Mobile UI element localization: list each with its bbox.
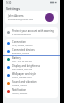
staticText: Colors, themed icons [12,76,32,79]
staticText: Dark theme, font size [12,68,33,71]
button[interactable]: John Abrams [5,11,58,24]
staticText: Settings [6,6,20,11]
staticText: johnabrams@gmail.com [8,18,34,21]
staticText: Sound and vibration [12,80,37,84]
button[interactable]: Sound and vibration [5,79,58,87]
button[interactable]: Connection [5,39,58,47]
staticText: Bluetooth, pairing [12,52,30,55]
button[interactable]: Display and brightness [5,63,58,71]
staticText: 3 recommendations [12,33,31,36]
staticText: Wi-Fi, mobile, hotspot [12,44,33,47]
staticText: Connection [12,40,26,44]
staticText: 9:30 [6,1,12,5]
button[interactable]: Notification [5,87,58,95]
staticText: 75% - 5 hr 20 min left [12,60,32,63]
staticText: Display and brightness [12,64,40,68]
staticText: Volume, haptics [12,84,27,87]
staticText: Notification [12,88,27,92]
staticText: Protect your account with warning [12,29,54,33]
button[interactable]: Protect your account with warning [5,27,58,37]
staticText: History, bubbles [12,92,28,95]
staticText: Connected devices [12,48,35,52]
button[interactable]: Wallpaper and style [5,71,58,79]
staticText: Wallpaper and style [12,72,36,76]
button[interactable]: Connected devices [5,47,58,55]
other: Account avatar [45,13,54,22]
button[interactable]: Battery [5,55,58,63]
staticText: John Abrams [8,14,24,18]
staticText: Battery [12,56,21,60]
